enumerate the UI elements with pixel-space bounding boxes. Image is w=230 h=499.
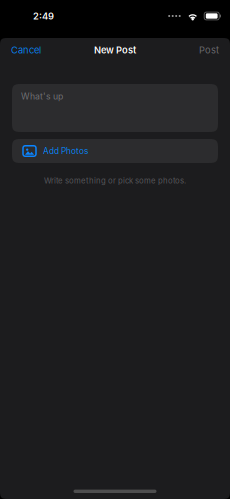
staticText: Cancel [11,44,41,56]
staticText: 2:49 [33,10,54,22]
staticText: What's up [21,91,63,101]
staticText: Add Photos [43,146,88,156]
staticText: New Post [94,44,136,56]
button[interactable]: Cancel [0,39,49,61]
staticText: Post [199,44,219,56]
staticText: Write something or pick some photos. [44,176,186,185]
button[interactable]: Add Photos [12,139,218,163]
button[interactable]: Post [191,39,230,61]
